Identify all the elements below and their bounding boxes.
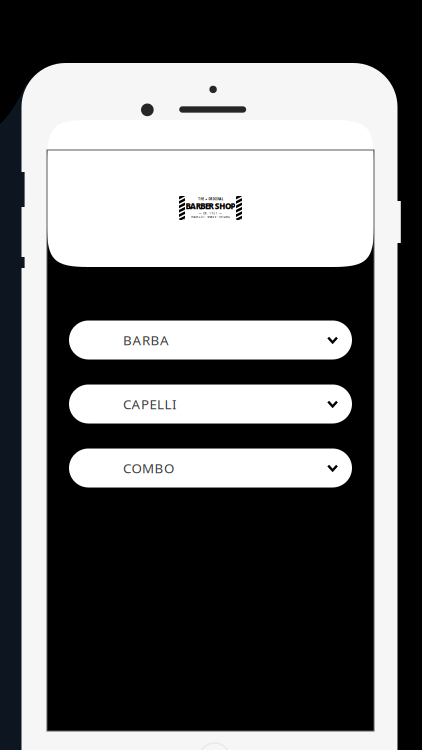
staticText: — Est. 1921 — bbox=[199, 211, 222, 215]
staticText: THE ★ ORIGINAL bbox=[198, 197, 223, 201]
button[interactable]: COMBO bbox=[69, 448, 352, 487]
button[interactable]: CAPELLI bbox=[69, 384, 352, 423]
staticText: HAIRCUT · SHAVE · STYLING bbox=[191, 215, 230, 219]
staticText: BARBA bbox=[123, 331, 169, 349]
staticText: CAPELLI bbox=[123, 395, 177, 413]
staticText: BARBER SHOP bbox=[185, 201, 235, 211]
staticText: COMBO bbox=[123, 459, 174, 477]
button[interactable]: BARBA bbox=[69, 320, 352, 359]
